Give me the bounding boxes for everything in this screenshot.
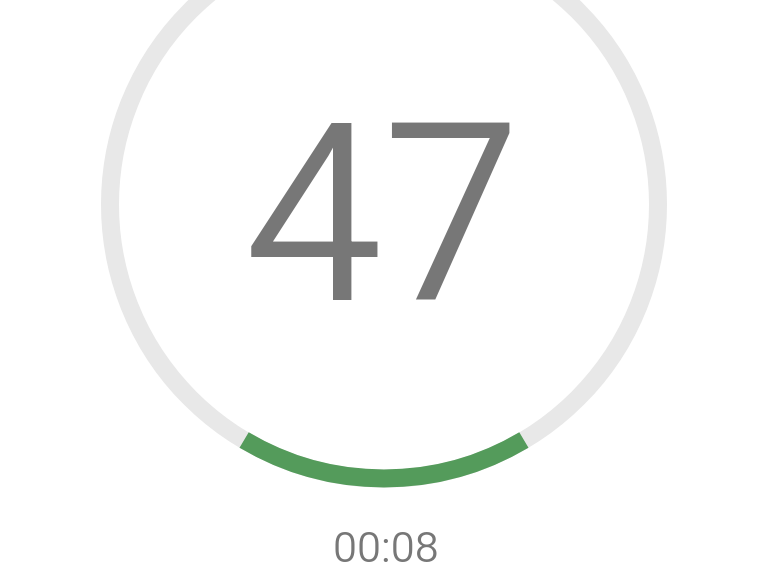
staticText: 00:08	[333, 522, 439, 572]
staticText: 47	[244, 70, 521, 361]
